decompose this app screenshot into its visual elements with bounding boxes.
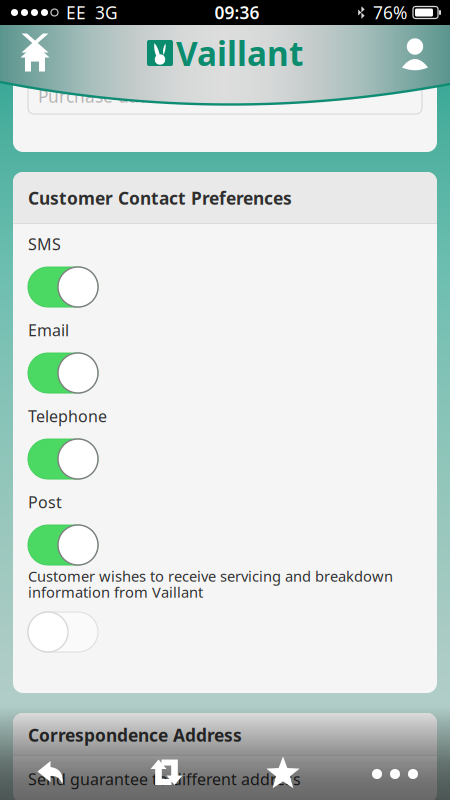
staticText: Telephone	[28, 405, 107, 427]
button[interactable]: Enabled	[28, 353, 98, 393]
button[interactable]: Back	[0, 750, 105, 798]
button[interactable]: Favourite	[228, 750, 338, 798]
staticText: 09:36	[214, 1, 259, 24]
button[interactable]: Enabled	[28, 439, 98, 479]
button[interactable]: Enabled	[28, 525, 98, 565]
button[interactable]: Enabled	[28, 267, 98, 307]
button[interactable]: Disabled	[28, 612, 98, 652]
staticText: Purchase date	[38, 84, 155, 107]
button[interactable]: More	[340, 750, 450, 798]
staticText: Post	[28, 491, 62, 513]
staticText: Correspondence Address	[28, 723, 242, 746]
staticText: Send guarantee to different address	[28, 768, 301, 790]
staticText: Vaillant	[176, 31, 303, 75]
staticText: Email	[28, 319, 69, 341]
staticText: 76%	[373, 1, 407, 24]
button[interactable]: Account	[384, 25, 446, 81]
staticText: SMS	[28, 233, 61, 255]
staticText: Customer wishes to receive servicing and…	[28, 566, 393, 586]
button[interactable]: Refresh	[110, 750, 225, 798]
button[interactable]: Home	[4, 25, 66, 81]
staticText: Customer Contact Preferences	[28, 186, 292, 209]
staticText: 3G	[95, 1, 118, 24]
staticText: EE	[66, 1, 86, 24]
staticText: information from Vaillant	[28, 582, 203, 602]
